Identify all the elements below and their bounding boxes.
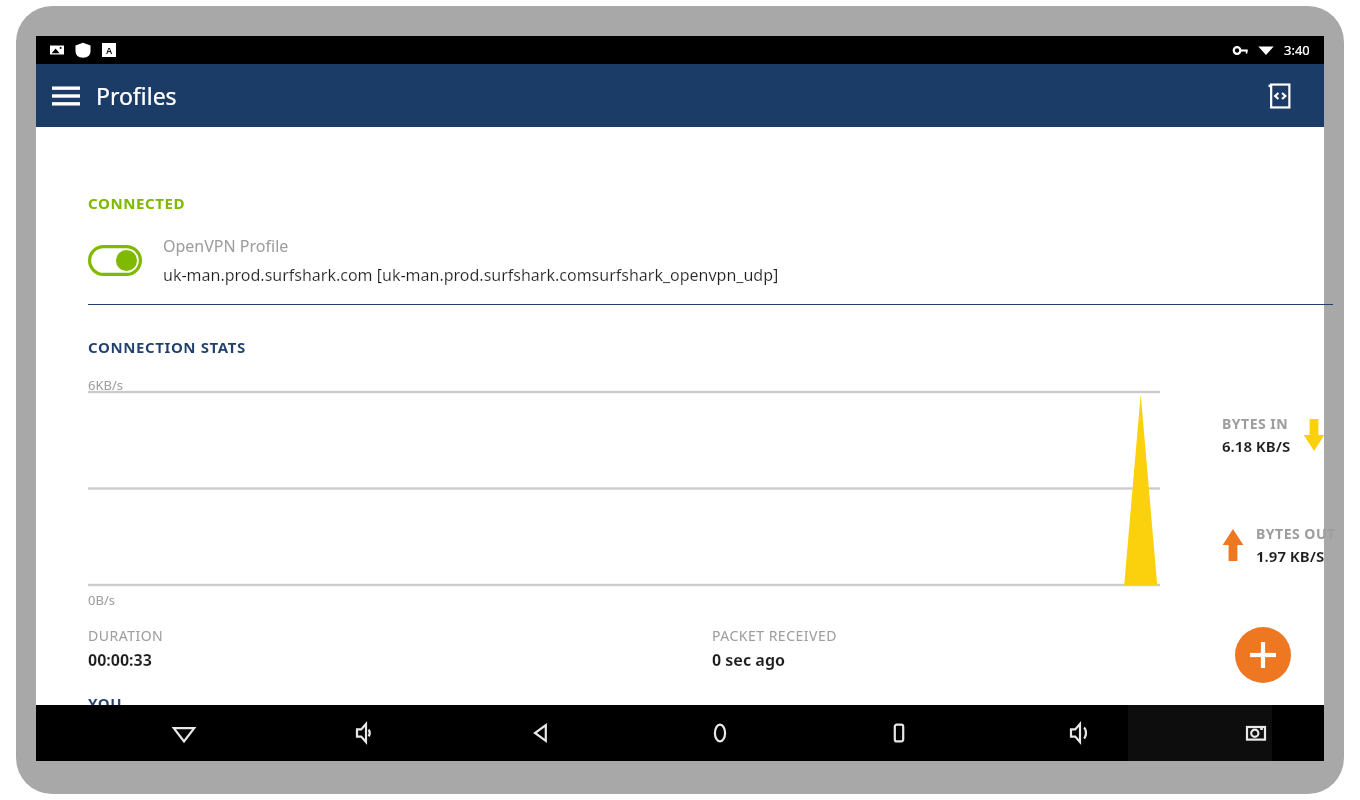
staticText: Profiles <box>96 80 177 111</box>
button[interactable]: Volume down <box>335 705 391 761</box>
button[interactable]: Import profile <box>1258 74 1302 118</box>
button[interactable]: Back <box>513 705 569 761</box>
button[interactable]: Collapse <box>156 705 212 761</box>
staticText: PACKET RECEIVED <box>712 626 837 645</box>
other: Menu <box>52 82 80 110</box>
staticText: 1.97 KB/S <box>1256 546 1325 566</box>
button[interactable]: Recent apps <box>871 705 927 761</box>
staticText: A <box>106 44 113 56</box>
staticText: CONNECTED <box>88 193 186 213</box>
button[interactable]: Menu <box>36 64 187 127</box>
staticText: CONNECTION STATS <box>88 337 246 357</box>
staticText: 6.18 KB/S <box>1222 436 1291 456</box>
staticText: 00:00:33 <box>88 649 152 671</box>
staticText: 0B/s <box>88 591 115 609</box>
button[interactable]: Volume up <box>1049 705 1105 761</box>
button[interactable]: Add profile <box>1235 627 1291 683</box>
staticText: BYTES OUT <box>1256 524 1336 543</box>
staticText: BYTES IN <box>1222 414 1289 433</box>
staticText: OpenVPN Profile <box>163 235 289 257</box>
staticText: 3:40 <box>1284 41 1310 59</box>
staticText: DURATION <box>88 626 164 645</box>
button[interactable]: Toggle VPN connection <box>88 230 1333 290</box>
staticText: uk-man.prod.surfshark.com [uk-man.prod.s… <box>163 264 779 286</box>
staticText: 6KB/s <box>88 376 123 394</box>
button[interactable]: Home <box>692 705 748 761</box>
staticText: 0 sec ago <box>712 649 786 671</box>
staticText: YOU <box>88 693 123 713</box>
other: Toggle VPN connection <box>88 245 142 276</box>
button[interactable]: Screenshot <box>1228 705 1284 761</box>
